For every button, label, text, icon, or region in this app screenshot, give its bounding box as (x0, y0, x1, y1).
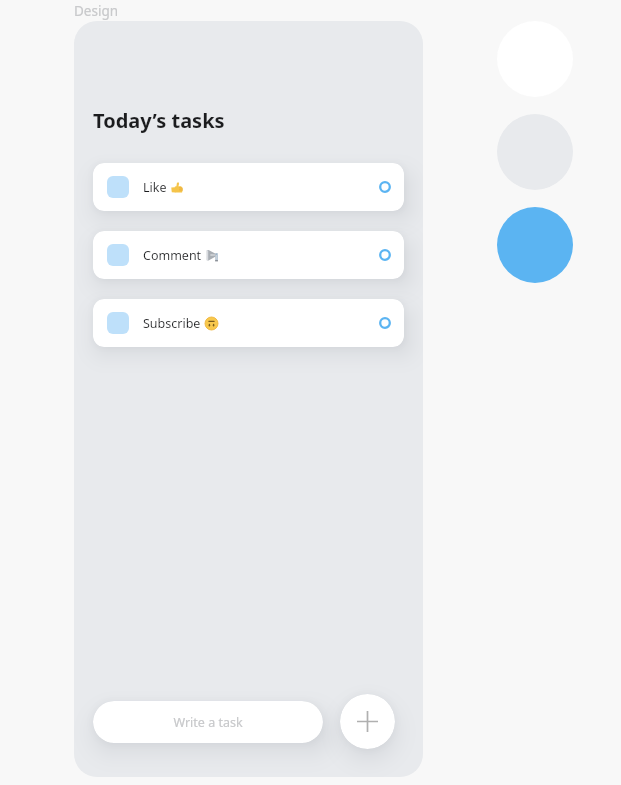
staticText: Design (74, 2, 119, 20)
staticText: Write a task (173, 714, 243, 731)
staticText: Comment (143, 247, 202, 264)
button[interactable]: Colour swatch (497, 114, 573, 190)
staticText: Like (143, 179, 167, 196)
staticText: Subscribe (143, 315, 201, 332)
button[interactable]: Like (93, 163, 404, 211)
button[interactable]: Colour swatch (497, 207, 573, 283)
button[interactable]: Comment (93, 231, 404, 279)
button[interactable]: Add task (340, 694, 395, 749)
button[interactable]: Write a task (93, 701, 323, 743)
staticText: Today’s tasks (93, 107, 225, 134)
button[interactable]: Subscribe (93, 299, 404, 347)
